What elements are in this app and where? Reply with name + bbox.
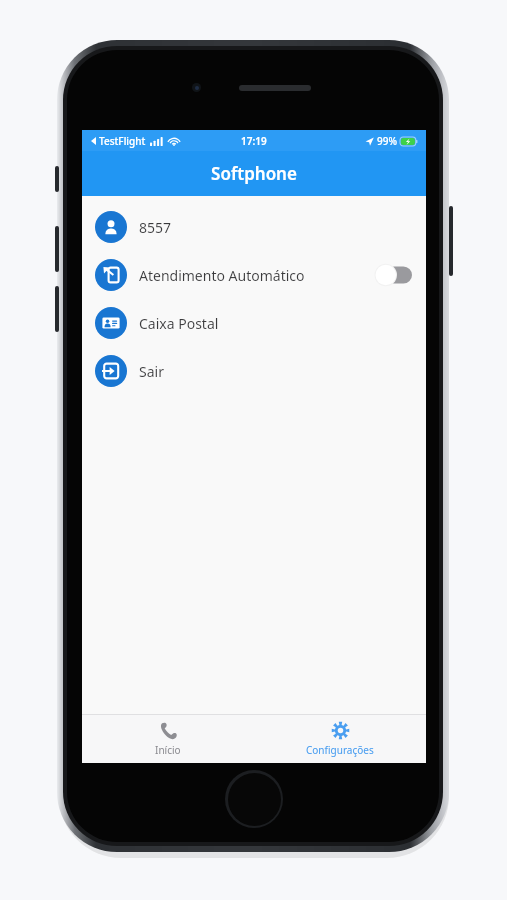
staticText: TestFlight bbox=[99, 134, 146, 148]
staticText: Início bbox=[155, 743, 181, 757]
staticText: 8557 bbox=[139, 218, 172, 237]
staticText: Softphone bbox=[211, 162, 297, 185]
staticText: 17:19 bbox=[241, 134, 267, 148]
button[interactable]: Atendimento Automático bbox=[82, 251, 426, 299]
button[interactable]: Sair bbox=[82, 347, 426, 395]
staticText: Sair bbox=[139, 362, 164, 381]
button[interactable]: Configurações bbox=[254, 715, 426, 763]
button[interactable]: 8557 bbox=[82, 203, 426, 251]
staticText: Configurações bbox=[306, 743, 374, 757]
button[interactable]: Caixa Postal bbox=[82, 299, 426, 347]
button[interactable]: Atendimento Automático toggle bbox=[374, 264, 412, 286]
button[interactable]: Início bbox=[82, 715, 254, 763]
staticText: Atendimento Automático bbox=[139, 266, 305, 285]
staticText: 99% bbox=[377, 134, 397, 148]
staticText: Caixa Postal bbox=[139, 314, 219, 333]
